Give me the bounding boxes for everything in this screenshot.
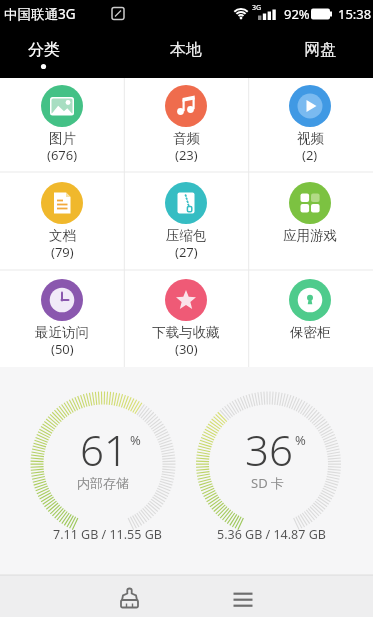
- button[interactable]: 图片: [0, 78, 124, 172]
- button[interactable]: 音频: [124, 78, 248, 172]
- staticText: (30): [175, 340, 198, 358]
- staticText: (79): [51, 243, 74, 261]
- staticText: (2): [302, 146, 318, 164]
- button[interactable]: 最近访问: [0, 270, 124, 367]
- staticText: (50): [51, 340, 74, 358]
- staticText: %: [130, 431, 141, 449]
- staticText: 92%: [284, 5, 310, 23]
- staticText: 下载与收藏: [152, 324, 220, 341]
- button[interactable]: [199, 578, 287, 617]
- button[interactable]: 分类: [8, 30, 80, 74]
- staticText: (23): [175, 146, 198, 164]
- staticText: 61: [80, 421, 128, 471]
- staticText: 图片: [49, 130, 76, 147]
- staticText: 应用游戏: [283, 227, 337, 244]
- button[interactable]: 压缩包: [124, 172, 248, 270]
- button[interactable]: 应用游戏: [248, 172, 372, 270]
- staticText: 保密柜: [290, 324, 331, 341]
- staticText: 本地: [170, 40, 202, 60]
- button[interactable]: 本地: [150, 30, 222, 74]
- staticText: 压缩包: [166, 227, 207, 244]
- button[interactable]: 视频: [248, 78, 372, 172]
- staticText: 内部存储: [77, 475, 129, 491]
- staticText: SD 卡: [251, 474, 285, 492]
- staticText: 5.36 GB / 14.87 GB: [217, 526, 326, 543]
- staticText: 最近访问: [35, 324, 89, 341]
- staticText: %: [295, 431, 306, 449]
- button[interactable]: 保密柜: [248, 270, 372, 367]
- staticText: 视频: [297, 130, 324, 147]
- staticText: 音频: [173, 130, 200, 147]
- button[interactable]: 网盘: [284, 30, 356, 74]
- staticText: 7.11 GB / 11.55 GB: [53, 526, 162, 543]
- staticText: 网盘: [304, 40, 336, 60]
- staticText: 36: [245, 421, 293, 471]
- button[interactable]: 文档: [0, 172, 124, 270]
- staticText: 文档: [49, 227, 76, 244]
- staticText: 分类: [28, 40, 60, 60]
- staticText: 15:38: [338, 5, 372, 23]
- button[interactable]: 下载与收藏: [124, 270, 248, 367]
- staticText: (27): [175, 243, 198, 261]
- staticText: (676): [47, 146, 78, 164]
- staticText: 中国联通3G: [4, 5, 76, 23]
- staticText: 3G: [252, 3, 262, 13]
- button[interactable]: [85, 578, 173, 617]
